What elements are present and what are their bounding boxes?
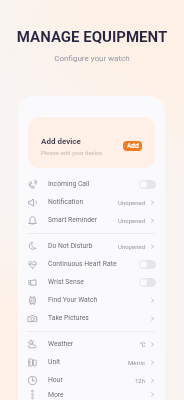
staticText: Unopened — [118, 199, 146, 206]
button[interactable]: Incoming Call — [18, 175, 165, 193]
staticText: Take Pictures — [48, 314, 89, 322]
button[interactable]: Weather — [18, 335, 165, 353]
staticText: Notification — [48, 198, 84, 206]
staticText: Smart Reminder — [48, 216, 97, 224]
staticText: MANAGE EQUIPMENT — [0, 28, 184, 46]
staticText: Unopened — [118, 243, 146, 250]
staticText: Unopened — [118, 217, 146, 224]
button[interactable]: Add device — [28, 117, 155, 168]
staticText: Do Not Disturb — [48, 242, 93, 250]
staticText: Incoming Call — [48, 180, 90, 188]
staticText: Metric — [128, 359, 146, 366]
staticText: ℃ — [140, 341, 146, 348]
staticText: 12h — [135, 377, 146, 384]
button[interactable]: Take Pictures — [18, 309, 165, 327]
button[interactable]: More — [18, 389, 165, 400]
staticText: Add — [127, 142, 139, 150]
staticText: More — [48, 391, 64, 399]
staticText: Unit — [48, 358, 61, 366]
button[interactable]: Unit — [18, 353, 165, 371]
staticText: Wrist Sense — [48, 278, 84, 286]
button[interactable]: Wrist Sense — [18, 273, 165, 291]
staticText: Add device — [41, 137, 81, 146]
button[interactable]: Notification — [18, 193, 165, 211]
button[interactable]: Hour — [18, 371, 165, 389]
staticText: Find Your Watch — [48, 296, 98, 304]
staticText: Hour — [48, 376, 63, 384]
staticText: Weather — [48, 340, 74, 348]
button[interactable]: Smart Reminder — [18, 211, 165, 229]
button[interactable]: Continuous Heart Rate — [18, 255, 165, 273]
button[interactable]: Add — [123, 141, 142, 151]
staticText: Please add your device — [41, 149, 103, 156]
button[interactable]: Do Not Disturb — [18, 237, 165, 255]
staticText: Continuous Heart Rate — [48, 260, 117, 268]
staticText: Configure your watch — [0, 54, 184, 63]
button[interactable]: Find Your Watch — [18, 291, 165, 309]
